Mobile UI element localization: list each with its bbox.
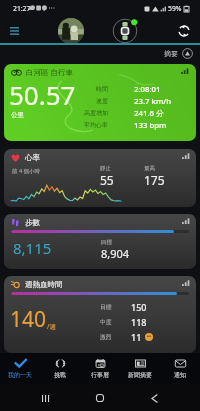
- staticText: 11: [131, 331, 142, 343]
- staticText: 21:27: [13, 4, 31, 13]
- staticText: 140: [10, 305, 47, 334]
- staticText: 摘要: [164, 49, 178, 58]
- button[interactable]: 白河區 自行車: [4, 64, 196, 141]
- button[interactable]: 新聞摘要: [120, 353, 160, 384]
- staticText: 速度: [78, 97, 108, 105]
- button[interactable]: 我的一天: [0, 353, 40, 384]
- button[interactable]: Menu: [5, 22, 23, 40]
- staticText: 中度: [100, 318, 112, 325]
- staticText: 8,115: [13, 238, 52, 258]
- button[interactable]: 通知: [160, 353, 200, 384]
- button[interactable]: Profile: [58, 18, 84, 44]
- staticText: 55: [100, 172, 114, 188]
- button[interactable]: Home: [92, 390, 108, 406]
- staticText: 241.6 分: [134, 108, 164, 119]
- staticText: 時間: [78, 85, 108, 93]
- staticText: 新聞摘要: [128, 371, 152, 379]
- button[interactable]: Device: [112, 18, 138, 44]
- button[interactable]: Recents: [38, 390, 54, 406]
- staticText: 公里: [11, 111, 24, 119]
- staticText: 23.7 km/h: [134, 96, 172, 107]
- staticText: 最高: [144, 165, 155, 172]
- staticText: 133 bpm: [134, 120, 167, 131]
- staticText: 175: [144, 172, 165, 188]
- staticText: 59%: [168, 4, 182, 13]
- staticText: /週: [47, 322, 56, 331]
- staticText: 8,904: [101, 246, 130, 261]
- button[interactable]: 挑戰: [40, 353, 80, 384]
- staticText: 高度增加: [78, 109, 108, 117]
- button[interactable]: 步數: [4, 214, 196, 269]
- button[interactable]: 心率: [4, 149, 196, 207]
- staticText: 行事曆: [91, 371, 109, 379]
- staticText: 通知: [174, 371, 186, 379]
- staticText: 目標: [101, 239, 112, 246]
- button[interactable]: 週熱血時間: [4, 276, 196, 353]
- staticText: 步數: [25, 218, 40, 227]
- staticText: 目標: [100, 303, 112, 310]
- staticText: 激烈: [100, 333, 112, 340]
- staticText: 週熱血時間: [25, 280, 63, 289]
- staticText: 前 4 個小時: [12, 167, 41, 175]
- button[interactable]: Summary: [164, 48, 193, 59]
- staticText: 2:08:01: [134, 84, 161, 95]
- staticText: 挑戰: [54, 371, 66, 379]
- button[interactable]: Sync: [176, 23, 192, 39]
- button[interactable]: 行事曆: [80, 353, 120, 384]
- staticText: 平均心率: [78, 121, 108, 129]
- staticText: 50.57: [9, 77, 76, 112]
- staticText: 150: [131, 301, 147, 313]
- staticText: 白河區 自行車: [26, 67, 73, 77]
- staticText: 我的一天: [8, 371, 32, 379]
- staticText: 心率: [25, 153, 40, 162]
- staticText: 118: [131, 316, 147, 328]
- button[interactable]: Back: [146, 390, 162, 406]
- staticText: 靜止: [100, 165, 111, 172]
